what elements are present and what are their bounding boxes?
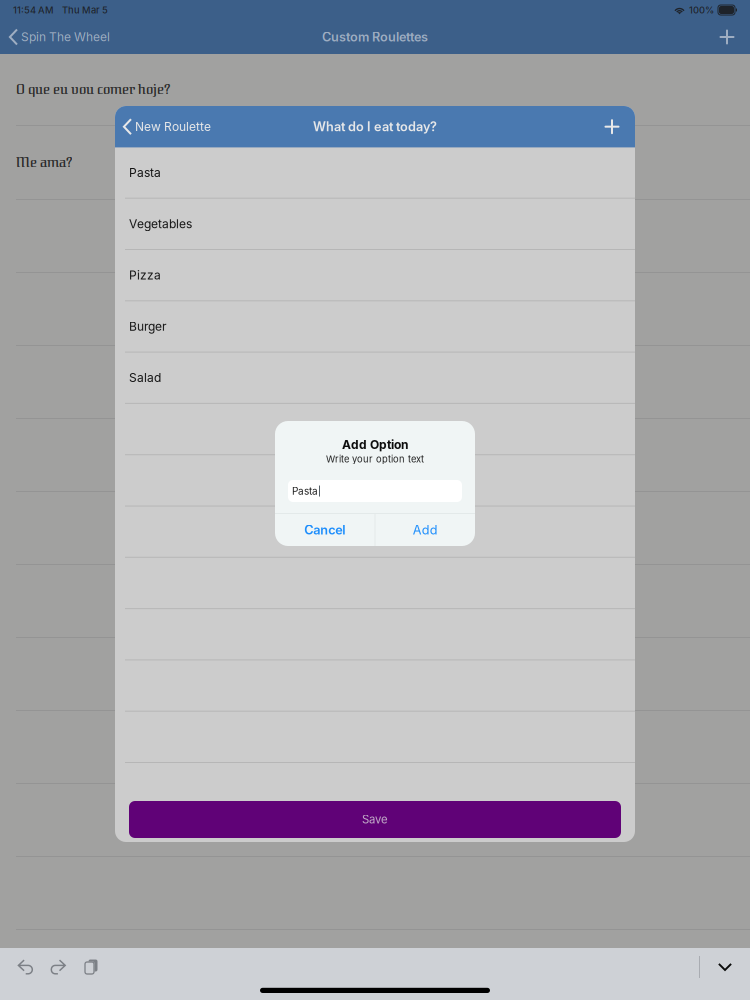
button[interactable]: Salad <box>115 353 635 404</box>
staticText: Add Option <box>342 437 408 452</box>
button[interactable]: Cancel <box>275 514 374 546</box>
staticText: Pizza <box>129 268 161 282</box>
button[interactable] <box>0 346 750 419</box>
button[interactable]: Redo <box>42 948 75 986</box>
button[interactable]: Pizza <box>115 250 635 301</box>
button[interactable] <box>115 404 635 455</box>
button[interactable]: Save <box>129 801 621 838</box>
button[interactable] <box>0 784 750 857</box>
button[interactable] <box>0 711 750 784</box>
button[interactable]: Paste <box>75 948 108 986</box>
button[interactable]: Hide keyboard <box>700 948 750 986</box>
staticText: Pasta <box>292 485 318 497</box>
staticText: Save <box>362 813 388 826</box>
staticText: 11:54 AM <box>13 4 54 16</box>
staticText: Salad <box>129 370 161 385</box>
staticText: Pasta <box>129 165 161 180</box>
staticText: Vegetables <box>129 217 192 231</box>
button[interactable] <box>0 565 750 638</box>
staticText: Thu Mar 5 <box>62 4 108 16</box>
button[interactable] <box>0 200 750 273</box>
button[interactable]: Spin The Wheel <box>0 20 110 54</box>
button[interactable]: New Roulette <box>115 106 211 147</box>
button[interactable]: Add option <box>589 106 635 147</box>
staticText: New Roulette <box>135 119 211 134</box>
staticText: O que eu vou comer hoje? <box>16 81 170 98</box>
staticText: Spin The Wheel <box>21 30 110 44</box>
button[interactable]: O que eu vou comer hoje? <box>0 54 750 126</box>
staticText: Me ama? <box>16 154 72 171</box>
button[interactable]: Burger <box>115 301 635 353</box>
button[interactable] <box>115 712 635 763</box>
button[interactable]: Me ama? <box>0 126 750 200</box>
staticText: 100% <box>689 4 714 16</box>
staticText: Custom Roulettes <box>322 29 428 45</box>
button[interactable] <box>115 455 635 506</box>
button[interactable]: Undo <box>9 948 42 986</box>
button[interactable]: Pasta <box>115 147 635 199</box>
button[interactable]: Vegetables <box>115 199 635 250</box>
button[interactable]: New roulette <box>704 20 750 54</box>
staticText: Add <box>413 522 438 538</box>
button[interactable] <box>0 492 750 565</box>
button[interactable] <box>0 273 750 346</box>
button[interactable] <box>0 638 750 711</box>
button[interactable] <box>115 506 635 558</box>
staticText: Burger <box>129 319 167 334</box>
staticText: What do I eat today? <box>313 119 437 134</box>
staticText: Cancel <box>304 522 345 538</box>
staticText: Write your option text <box>326 453 424 465</box>
button[interactable]: Add <box>375 514 475 546</box>
button[interactable] <box>0 419 750 492</box>
